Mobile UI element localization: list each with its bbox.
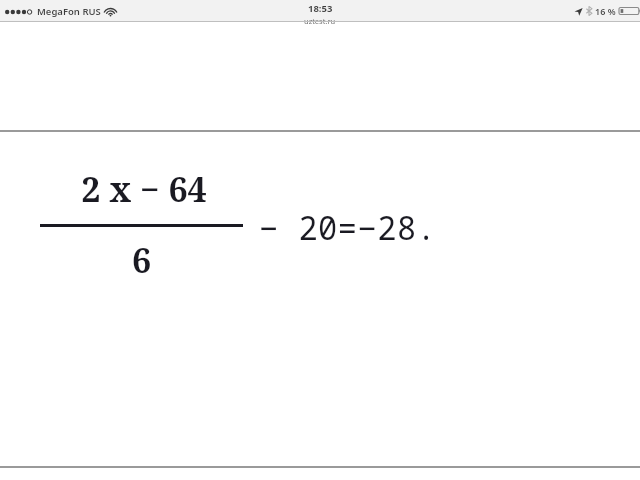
staticText: 18:53 [308,2,333,15]
staticText: 16 % [595,5,616,17]
staticText: 6 [40,237,243,283]
other: Status indicators [574,5,640,17]
staticText: uztest.ru [304,16,336,24]
staticText: − 20=−28. [259,206,437,250]
staticText: 2 x − 64 [46,166,242,212]
staticText: MegaFon RUS [37,5,101,18]
